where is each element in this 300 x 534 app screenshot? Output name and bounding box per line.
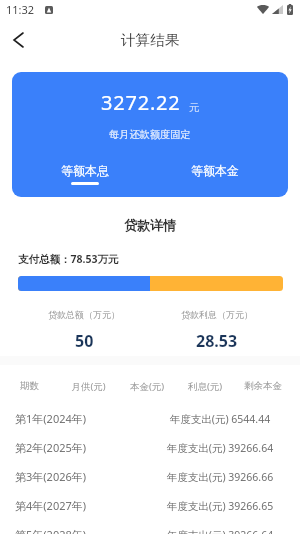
staticText: 剩余本金 — [234, 380, 292, 392]
button[interactable]: 第3年(2026年) — [0, 462, 300, 491]
staticText: 年度支出(元) 39266.64 — [150, 528, 290, 534]
staticText: 年度支出(元) 39266.64 — [150, 441, 290, 455]
staticText: 28.53 — [196, 330, 238, 352]
staticText: 贷款详情 — [0, 217, 300, 233]
staticText: 贷款总额（万元） — [48, 309, 120, 320]
staticText: 等额本息 — [61, 163, 109, 178]
staticText: 利息(元) — [176, 380, 234, 393]
staticText: 3272.22 — [101, 89, 181, 116]
button[interactable]: 等额本金 — [150, 163, 280, 182]
staticText: 第3年(2026年) — [15, 469, 87, 484]
staticText: 期数 — [0, 380, 59, 392]
staticText: 第5年(2028年) — [15, 527, 87, 534]
staticText: 等额本金 — [191, 163, 239, 178]
button[interactable]: 第4年(2027年) — [0, 491, 300, 520]
staticText: 第1年(2024年) — [15, 411, 87, 426]
button[interactable]: Back — [5, 27, 31, 53]
staticText: 月供(元) — [59, 380, 118, 393]
staticText: 元 — [189, 101, 200, 114]
staticText: 计算结果 — [121, 31, 180, 49]
staticText: 本金(元) — [118, 380, 176, 393]
staticText: 贷款利息（万元） — [181, 309, 253, 320]
staticText: 第2年(2025年) — [15, 440, 87, 455]
staticText: 支付总额：78.53万元 — [18, 252, 119, 266]
staticText: 年度支出(元) 39266.66 — [150, 470, 290, 484]
staticText: 11:32 — [6, 2, 35, 17]
button[interactable]: 第5年(2028年) — [0, 520, 300, 534]
staticText: 第4年(2027年) — [15, 498, 87, 513]
button[interactable]: 第1年(2024年) — [0, 404, 300, 433]
button[interactable]: 第2年(2025年) — [0, 433, 300, 462]
staticText: 50 — [75, 330, 94, 352]
button[interactable]: 等额本息 — [20, 163, 150, 185]
staticText: 年度支出(元) 39266.65 — [150, 499, 290, 513]
staticText: 每月还款额度固定 — [109, 128, 191, 141]
staticText: 年度支出(元) 6544.44 — [150, 412, 290, 426]
